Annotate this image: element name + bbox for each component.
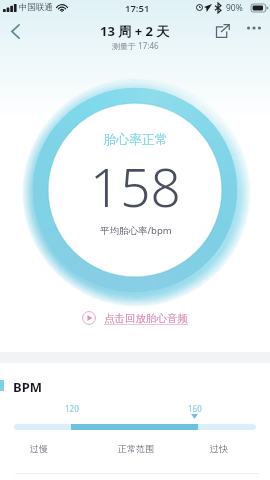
staticText: 17:51 [125, 2, 150, 15]
staticText: 158 [90, 150, 181, 222]
staticText: 胎心率正常 [103, 131, 168, 147]
staticText: 点击回放胎心音频 [104, 312, 188, 325]
staticText: 平均胎心率/bpm [100, 224, 172, 237]
staticText: 13 周 + 2 天 [100, 22, 170, 40]
staticText: 160 [188, 403, 202, 414]
staticText: 测量于 17:46 [112, 40, 159, 51]
button[interactable]: Share [207, 18, 238, 44]
button[interactable]: 点击回放胎心音频 [0, 311, 270, 325]
staticText: 120 [65, 403, 79, 414]
staticText: 过快 [210, 443, 228, 454]
button[interactable]: Back [0, 13, 30, 49]
staticText: 过慢 [30, 443, 48, 454]
staticText: 正常范围 [118, 443, 154, 454]
button[interactable]: More options [241, 17, 267, 39]
staticText: 中国联通 [19, 2, 53, 13]
staticText: 90% [226, 2, 243, 14]
staticText: BPM [13, 378, 42, 396]
